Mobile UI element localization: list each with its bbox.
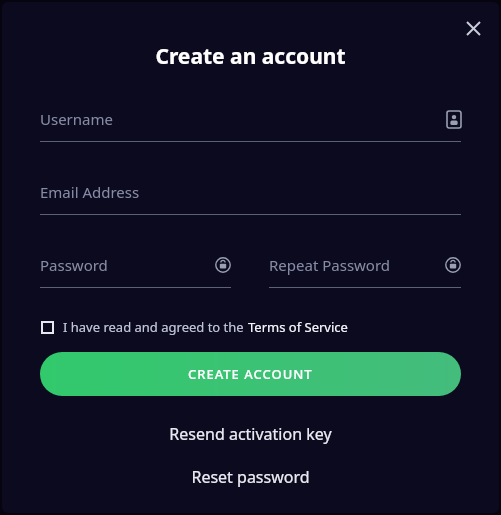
staticText: Password bbox=[40, 255, 108, 275]
other: Username info bbox=[447, 111, 461, 128]
button[interactable]: Close bbox=[457, 12, 489, 44]
button[interactable]: Email Address bbox=[40, 178, 461, 206]
staticText: Email Address bbox=[40, 182, 140, 202]
staticText: I have read and agreed to the bbox=[63, 318, 248, 336]
button[interactable]: Terms of Service bbox=[248, 318, 348, 336]
staticText: Username bbox=[40, 109, 113, 129]
staticText: Create an account bbox=[40, 42, 461, 71]
staticText: Resend activation key bbox=[169, 423, 332, 445]
button[interactable]: Password bbox=[40, 251, 231, 279]
button[interactable]: Username bbox=[40, 105, 461, 133]
button[interactable]: I have read and agreed to the bbox=[40, 318, 461, 336]
button[interactable]: Repeat Password bbox=[269, 251, 461, 279]
button[interactable]: CREATE ACCOUNT bbox=[40, 352, 461, 396]
button[interactable]: Reset password bbox=[40, 466, 461, 488]
staticText: CREATE ACCOUNT bbox=[188, 365, 313, 383]
other: Password visibility bbox=[215, 257, 231, 273]
button[interactable]: Resend activation key bbox=[40, 423, 461, 445]
other: Password visibility bbox=[445, 257, 461, 273]
staticText: Reset password bbox=[191, 466, 310, 488]
staticText: Repeat Password bbox=[269, 255, 391, 275]
